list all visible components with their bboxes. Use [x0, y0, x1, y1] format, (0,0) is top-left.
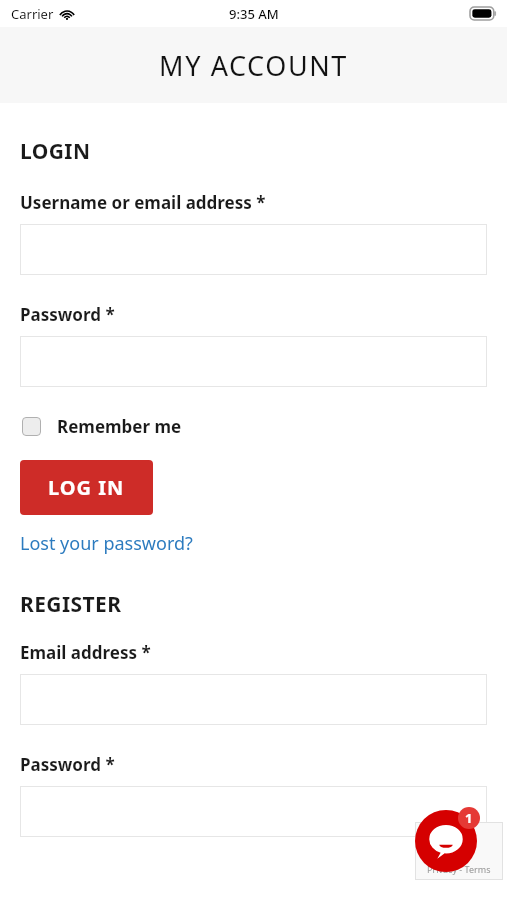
staticText: Email address * — [20, 641, 151, 664]
staticText: LOGIN — [20, 137, 91, 166]
button[interactable]: Lost your password? — [20, 531, 193, 556]
staticText: Remember me — [57, 415, 182, 438]
staticText: 9:35 AM — [229, 5, 279, 23]
button[interactable]: Remember me — [20, 413, 184, 440]
button[interactable]: Open chat — [415, 810, 477, 872]
button[interactable]: LOG IN — [20, 460, 153, 515]
staticText: 1 — [465, 809, 473, 827]
staticText: Password * — [20, 303, 115, 326]
button[interactable] — [20, 674, 487, 725]
staticText: Username or email address * — [20, 191, 266, 214]
staticText: Carrier — [11, 5, 54, 23]
staticText: Privacy - Terms — [427, 863, 491, 875]
staticText: REGISTER — [20, 590, 122, 619]
staticText: MY ACCOUNT — [159, 47, 348, 84]
button[interactable] — [20, 336, 487, 387]
staticText: Password * — [20, 753, 115, 776]
staticText: Lost your password? — [20, 531, 193, 556]
button[interactable] — [20, 224, 487, 275]
staticText: LOG IN — [48, 474, 125, 501]
button[interactable] — [20, 786, 487, 837]
